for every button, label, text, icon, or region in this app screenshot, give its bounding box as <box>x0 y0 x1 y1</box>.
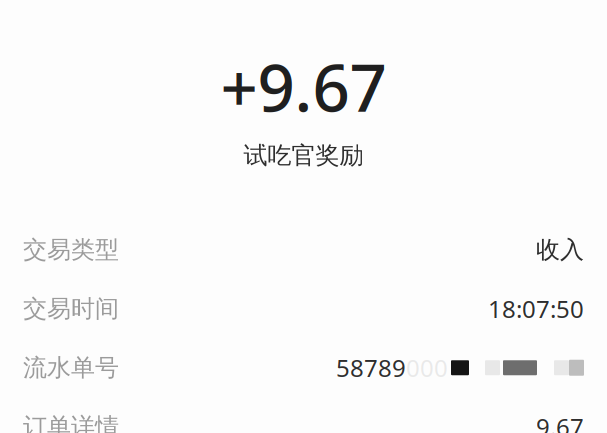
staticText: 流水单号 <box>23 353 119 382</box>
staticText: 试吃官奖励 <box>243 141 363 170</box>
button[interactable]: 流水单号 <box>0 338 607 397</box>
staticText: 58789 <box>336 352 406 384</box>
staticText: +9.67 <box>220 43 386 130</box>
staticText: 订单详情 <box>23 412 119 433</box>
button[interactable]: 订单详情 <box>0 397 607 433</box>
staticText: 18:07:50 <box>488 293 584 325</box>
staticText: 9.67 <box>536 411 584 433</box>
button[interactable]: 交易时间 <box>0 279 607 338</box>
button[interactable]: 交易类型 <box>0 220 607 279</box>
staticText: 收入 <box>536 235 584 264</box>
staticText: 交易时间 <box>23 294 119 323</box>
staticText: 交易类型 <box>23 235 119 264</box>
staticText: 000 <box>406 352 448 384</box>
